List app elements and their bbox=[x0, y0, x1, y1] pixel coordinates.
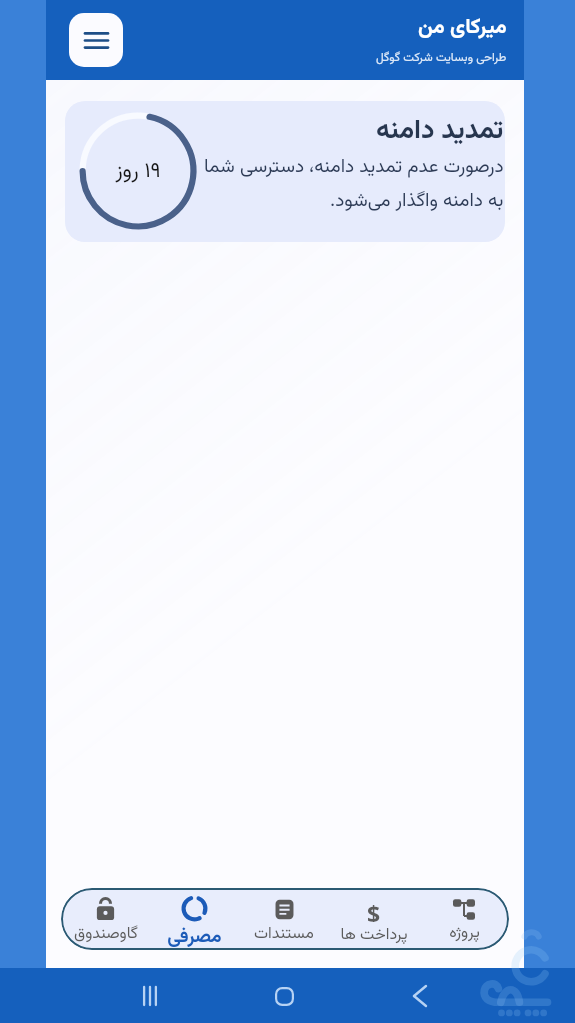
staticText: $ bbox=[367, 898, 381, 922]
button[interactable]: مصرفی bbox=[150, 888, 239, 950]
staticText: پرداخت ها bbox=[340, 923, 408, 948]
staticText: طراحی وبسایت شرکت گوگل bbox=[376, 49, 507, 68]
button[interactable]: Menu bbox=[69, 13, 123, 67]
button[interactable]: Back bbox=[400, 976, 440, 1016]
button[interactable]: ۱۹ روز bbox=[65, 101, 505, 242]
staticText: میرکای من bbox=[418, 11, 507, 44]
staticText: درصورت عدم تمدید دامنه، دسترسی شما bbox=[204, 153, 504, 183]
staticText: تمدید دامنه bbox=[376, 110, 504, 152]
button[interactable]: $ bbox=[329, 888, 419, 950]
staticText: گاوصندوق bbox=[74, 922, 138, 947]
staticText: مستندات bbox=[254, 922, 314, 947]
button[interactable]: گاوصندوق bbox=[61, 888, 150, 950]
button[interactable]: مستندات bbox=[239, 888, 329, 950]
button[interactable]: Home bbox=[264, 976, 304, 1016]
staticText: به دامنه واگذار می‌شود. bbox=[330, 187, 504, 217]
button[interactable]: Recents bbox=[130, 976, 170, 1016]
staticText: مصرفی bbox=[167, 923, 222, 950]
staticText: ۱۹ روز bbox=[115, 155, 161, 188]
staticText: پروژه bbox=[449, 921, 480, 946]
button[interactable]: پروژه bbox=[419, 888, 509, 950]
